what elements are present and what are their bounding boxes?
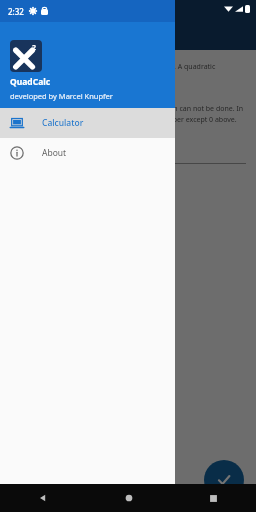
button[interactable]: Recents (171, 484, 256, 512)
staticText: 2 (32, 43, 37, 53)
staticText: QuadCalc (10, 76, 51, 88)
button[interactable]: Calculate (204, 460, 244, 500)
staticText: Calculator (42, 117, 84, 129)
staticText: developed by Marcel Knupfer (10, 91, 113, 101)
button[interactable]: Calculator (0, 108, 175, 138)
staticText: About (42, 147, 67, 159)
button[interactable]: Back (0, 484, 86, 512)
staticText: Note that a may not be 0, otherwise the … (10, 104, 246, 124)
staticText: Enter the coefficients a, b and c in the… (10, 62, 246, 82)
staticText: 2:32 (8, 6, 24, 17)
button[interactable]: Home (86, 484, 171, 512)
button[interactable]: About (0, 138, 175, 168)
